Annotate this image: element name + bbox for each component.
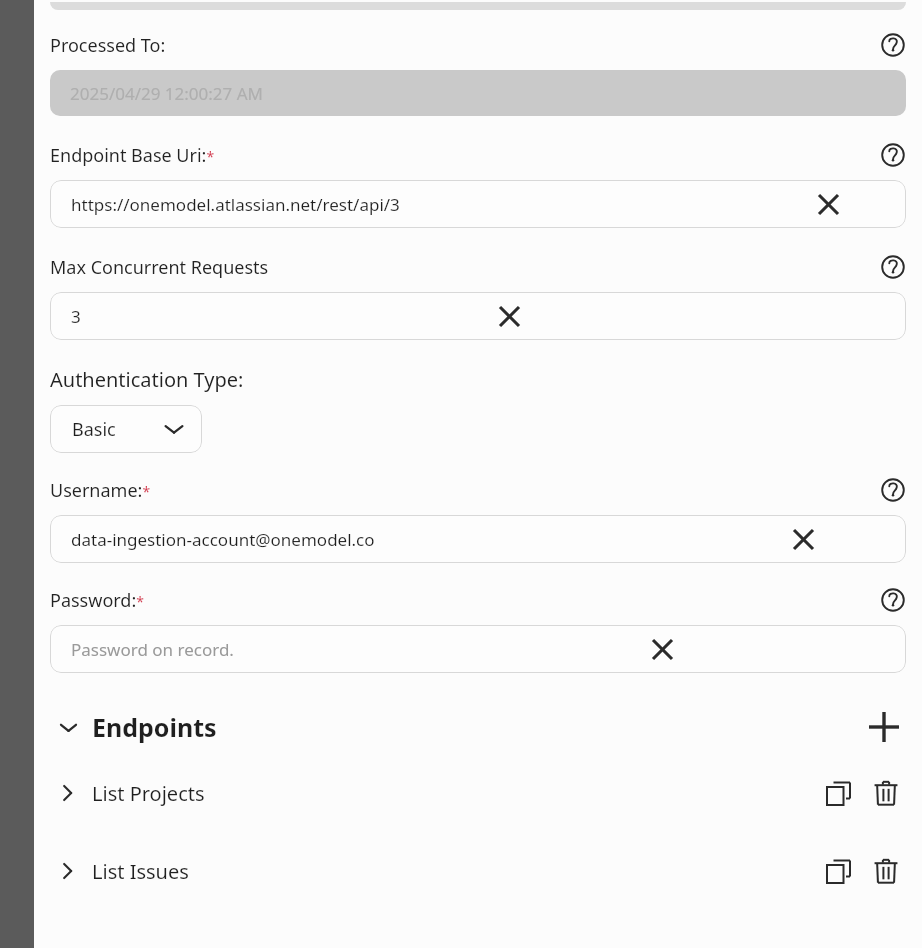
button[interactable]: data-ingestion-account@onemodel.co [50, 515, 906, 563]
button[interactable]: Clear [640, 627, 684, 671]
staticText: List Projects [92, 780, 205, 807]
staticText: Processed To: [50, 33, 166, 58]
staticText: 3 [71, 305, 81, 328]
button[interactable]: Delete [864, 771, 908, 815]
button[interactable]: Clear [781, 517, 825, 561]
button[interactable]: Add endpoint [860, 703, 908, 751]
button[interactable]: Clear [806, 182, 850, 226]
staticText: Username:* [50, 478, 151, 503]
button[interactable]: Duplicate [816, 771, 860, 815]
staticText: Endpoint Base Uri:* [50, 143, 215, 168]
staticText: Authentication Type: [50, 366, 244, 393]
button[interactable]: Help [878, 585, 908, 615]
staticText: Password on record. [71, 638, 234, 661]
staticText: Max Concurrent Requests [50, 255, 269, 280]
button[interactable]: Help [878, 475, 908, 505]
button[interactable]: Duplicate [816, 849, 860, 893]
staticText: Basic [72, 417, 116, 442]
button[interactable]: Clear [487, 294, 531, 338]
button[interactable]: https://onemodel.atlassian.net/rest/api/… [50, 180, 906, 228]
staticText: Password:* [50, 588, 144, 613]
button[interactable]: Help [878, 140, 908, 170]
staticText: data-ingestion-account@onemodel.co [71, 528, 375, 551]
staticText: 2025/04/29 12:00:27 AM [70, 82, 264, 105]
button[interactable]: List Issues [48, 849, 908, 893]
button[interactable]: Delete [864, 849, 908, 893]
button[interactable]: Help [878, 252, 908, 282]
button[interactable]: List Projects [48, 771, 908, 815]
button[interactable]: 2025/04/29 12:00:27 AM [50, 70, 906, 116]
button[interactable]: Help [878, 30, 908, 60]
button[interactable]: Endpoints [92, 710, 217, 744]
button[interactable]: Password on record. [50, 625, 906, 673]
staticText: https://onemodel.atlassian.net/rest/api/… [71, 193, 400, 216]
button[interactable]: 3 [50, 292, 906, 340]
staticText: List Issues [92, 858, 189, 885]
button[interactable]: Collapse Endpoints [48, 707, 88, 747]
button[interactable]: Basic [50, 405, 202, 453]
